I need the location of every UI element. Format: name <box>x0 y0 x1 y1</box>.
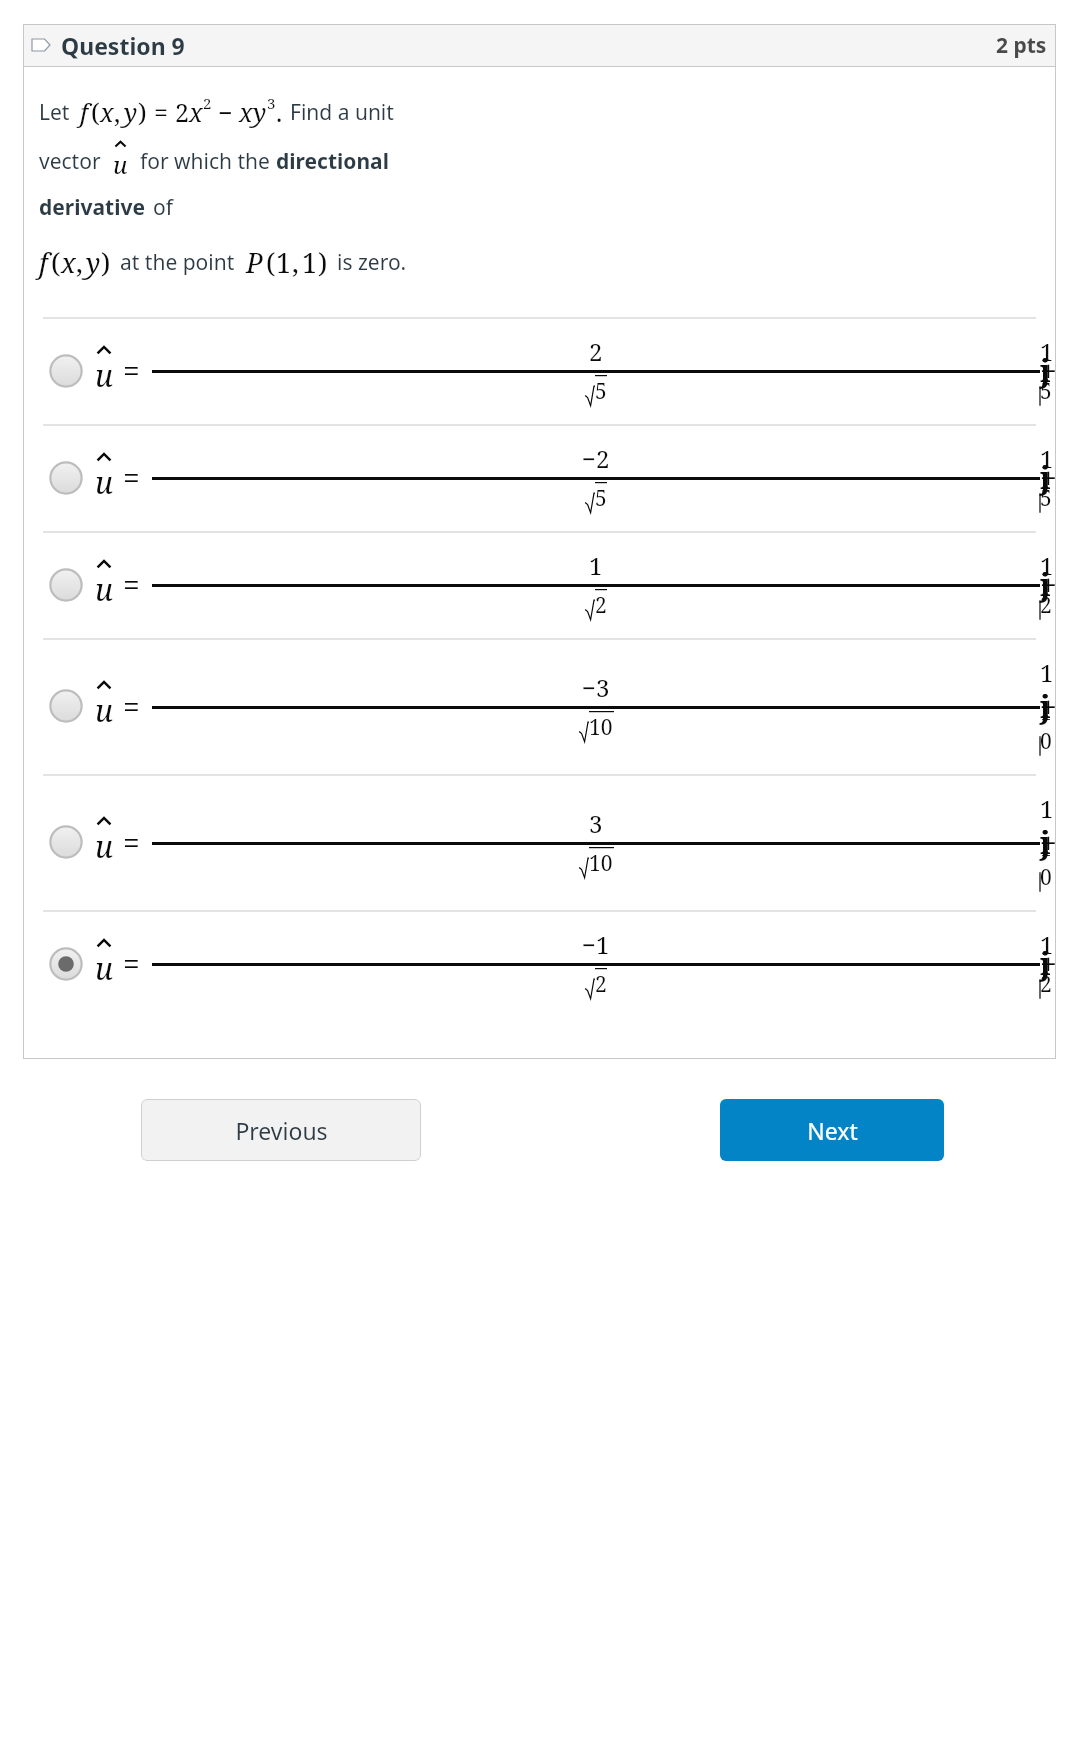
staticText: vector <box>39 147 101 176</box>
staticText: x <box>100 95 114 129</box>
staticText: 3 <box>589 807 603 840</box>
staticText: = <box>123 350 140 391</box>
staticText: −2 <box>582 442 610 475</box>
button[interactable]: u <box>39 776 1040 910</box>
staticText: − <box>218 95 233 129</box>
staticText: = <box>123 822 140 863</box>
staticText: f <box>80 95 88 129</box>
staticText: 5 <box>595 377 607 406</box>
staticText: Find a unit <box>290 98 394 127</box>
staticText: derivative <box>39 193 145 222</box>
staticText: 10 <box>589 849 613 878</box>
staticText: . <box>276 95 283 129</box>
staticText: ) <box>101 244 111 281</box>
staticText: is zero. <box>337 248 407 277</box>
staticText: u <box>95 826 113 867</box>
staticText: = <box>123 457 140 498</box>
staticText: = <box>123 686 140 727</box>
staticText: Let <box>39 98 70 127</box>
staticText: y <box>253 95 267 129</box>
button[interactable]: u <box>39 640 1040 774</box>
staticText: ( <box>266 244 276 281</box>
button[interactable]: u <box>39 912 1040 1017</box>
staticText: , <box>292 244 299 281</box>
button[interactable]: Next <box>720 1099 944 1161</box>
staticText: f <box>39 244 48 281</box>
staticText: , <box>76 244 83 281</box>
button[interactable]: Previous <box>141 1099 421 1161</box>
staticText: u <box>95 569 113 610</box>
staticText: ( <box>51 244 61 281</box>
staticText: Next <box>807 1115 858 1146</box>
staticText: = <box>123 943 140 984</box>
staticText: of <box>153 193 173 222</box>
staticText: 2 pts <box>996 31 1047 60</box>
staticText: u <box>95 690 113 731</box>
staticText: u <box>95 948 113 989</box>
staticText: ( <box>91 95 100 129</box>
staticText: −3 <box>582 671 610 704</box>
staticText: Question 9 <box>61 30 185 61</box>
staticText: u <box>95 462 113 503</box>
other: Flag question <box>32 39 50 51</box>
staticText: at the point <box>120 248 235 277</box>
staticText: 2 <box>203 93 212 113</box>
staticText: u <box>95 355 113 396</box>
staticText: ) <box>318 244 328 281</box>
staticText: y <box>124 95 138 129</box>
button[interactable]: u <box>39 319 1040 424</box>
staticText: 2 <box>595 591 607 620</box>
staticText: −1 <box>582 928 610 961</box>
staticText: y <box>86 244 101 281</box>
staticText: 1 <box>276 244 292 281</box>
staticText: = <box>154 95 168 129</box>
staticText: 1 <box>302 244 318 281</box>
button[interactable]: u <box>39 426 1040 531</box>
staticText: directional <box>276 147 389 176</box>
staticText: x <box>239 95 253 129</box>
staticText: 2 <box>595 970 607 999</box>
staticText: 3 <box>267 93 276 113</box>
staticText: Previous <box>235 1115 328 1146</box>
staticText: = <box>123 564 140 605</box>
staticText: ) <box>138 95 147 129</box>
staticText: x <box>189 95 203 129</box>
staticText: 1 <box>589 549 603 582</box>
staticText: , <box>114 95 121 129</box>
staticText: 2 <box>589 335 603 368</box>
staticText: for which the <box>140 147 276 176</box>
staticText: 5 <box>595 484 607 513</box>
staticText: 2 <box>175 95 189 129</box>
staticText: 10 <box>589 713 613 742</box>
button[interactable]: u <box>39 533 1040 638</box>
staticText: x <box>61 244 76 281</box>
staticText: P <box>246 244 263 281</box>
staticText: u <box>113 148 128 181</box>
